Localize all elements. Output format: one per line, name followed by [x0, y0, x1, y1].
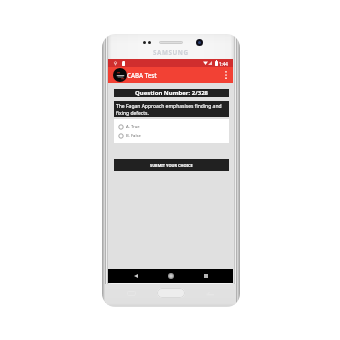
- button[interactable]: Recents: [198, 269, 214, 283]
- button[interactable]: Question Number: 2/328: [114, 89, 229, 97]
- button[interactable]: Home: [163, 269, 179, 283]
- button[interactable]: More options: [222, 67, 230, 83]
- staticText: The Fagan Approach emphasises finding an…: [116, 103, 228, 117]
- staticText: CABA Test: [127, 71, 157, 79]
- button[interactable]: Back: [128, 269, 144, 283]
- button[interactable]: Home: [157, 288, 185, 298]
- button[interactable]: A. True: [114, 123, 229, 130]
- staticText: Question Number: 2/328: [135, 89, 208, 97]
- button[interactable]: B. False: [114, 132, 229, 139]
- staticText: SAMSUNG: [153, 48, 189, 56]
- staticText: A. True: [126, 124, 140, 130]
- button[interactable]: App logo: [113, 68, 127, 82]
- staticText: SUBMIT YOUR CHOICE: [150, 163, 193, 168]
- button[interactable]: SUBMIT YOUR CHOICE: [114, 159, 229, 171]
- staticText: B. False: [126, 133, 141, 139]
- staticText: 1:44: [219, 61, 228, 67]
